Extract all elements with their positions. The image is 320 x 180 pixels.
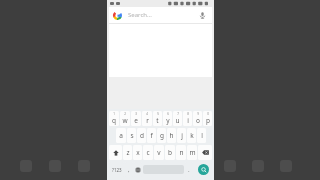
staticText: e — [134, 116, 138, 125]
staticText: p — [206, 116, 210, 125]
button[interactable]: 5 — [153, 111, 162, 126]
staticText: 7 — [177, 112, 179, 116]
button[interactable]: ?123 — [109, 162, 124, 177]
button[interactable]: z — [123, 145, 132, 160]
button[interactable]: 6 — [163, 111, 172, 126]
button[interactable]: 7 — [173, 111, 182, 126]
button[interactable]: b — [165, 145, 175, 160]
staticText: z — [126, 148, 130, 157]
staticText: 0 — [207, 112, 209, 116]
staticText: w — [122, 116, 128, 125]
staticText: k — [190, 131, 194, 140]
button[interactable]: x — [133, 145, 142, 160]
button[interactable]: Search... — [109, 7, 212, 23]
button[interactable]: . — [185, 162, 193, 177]
button[interactable]: 1 — [109, 111, 119, 126]
staticText: m — [189, 148, 196, 157]
staticText: j — [181, 131, 183, 140]
staticText: u — [175, 116, 180, 125]
staticText: n — [179, 148, 184, 157]
button[interactable]: a — [116, 128, 126, 143]
button[interactable]: l — [197, 128, 206, 143]
staticText: b — [168, 148, 172, 157]
staticText: g — [160, 131, 164, 140]
button[interactable]: 3 — [131, 111, 141, 126]
staticText: 2 — [124, 112, 126, 116]
staticText: r — [146, 116, 149, 125]
button[interactable]: g — [157, 128, 166, 143]
staticText: o — [196, 116, 200, 125]
staticText: a — [119, 131, 123, 140]
staticText: 5 — [157, 112, 159, 116]
staticText: v — [157, 148, 161, 157]
staticText: 9 — [197, 112, 199, 116]
button[interactable]: 4 — [142, 111, 152, 126]
button[interactable]: Change keyboard language — [134, 162, 142, 177]
staticText: x — [136, 148, 140, 157]
button[interactable]: , — [125, 162, 133, 177]
button[interactable]: f — [147, 128, 156, 143]
button[interactable]: 9 — [193, 111, 202, 126]
button[interactable]: Backspace — [198, 145, 212, 160]
button[interactable]: n — [176, 145, 186, 160]
button[interactable]: Voice search — [196, 9, 208, 21]
staticText: 8 — [187, 112, 189, 116]
button[interactable]: m — [187, 145, 197, 160]
staticText: s — [130, 131, 134, 140]
staticText: y — [166, 116, 170, 125]
button[interactable]: 8 — [183, 111, 192, 126]
staticText: i — [187, 116, 189, 125]
button[interactable]: h — [167, 128, 176, 143]
button[interactable]: d — [137, 128, 146, 143]
staticText: 3 — [135, 112, 137, 116]
staticText: 6 — [167, 112, 169, 116]
button[interactable]: 2 — [120, 111, 130, 126]
staticText: , — [128, 166, 130, 174]
staticText: l — [201, 131, 203, 140]
button[interactable]: k — [187, 128, 196, 143]
button[interactable]: c — [143, 145, 153, 160]
staticText: 4 — [146, 112, 148, 116]
staticText: q — [112, 116, 116, 125]
staticText: c — [146, 148, 150, 157]
button[interactable]: 0 — [203, 111, 212, 126]
staticText: . — [188, 166, 190, 174]
button[interactable]: v — [154, 145, 164, 160]
staticText: ?123 — [112, 167, 122, 173]
staticText: d — [140, 131, 144, 140]
button[interactable]: s — [127, 128, 136, 143]
staticText: 1 — [113, 112, 115, 116]
button[interactable]: Search — [198, 164, 209, 175]
staticText: Search... — [128, 11, 152, 19]
staticText: h — [169, 131, 174, 140]
button[interactable]: Shift — [109, 145, 122, 160]
staticText: t — [156, 116, 159, 125]
staticText: f — [150, 131, 153, 140]
button[interactable]: j — [177, 128, 186, 143]
